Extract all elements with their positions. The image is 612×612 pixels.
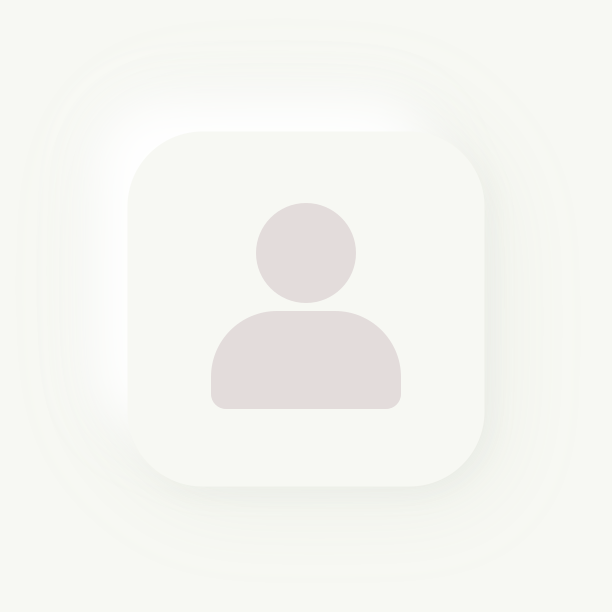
button[interactable]: Profile xyxy=(127,131,484,486)
